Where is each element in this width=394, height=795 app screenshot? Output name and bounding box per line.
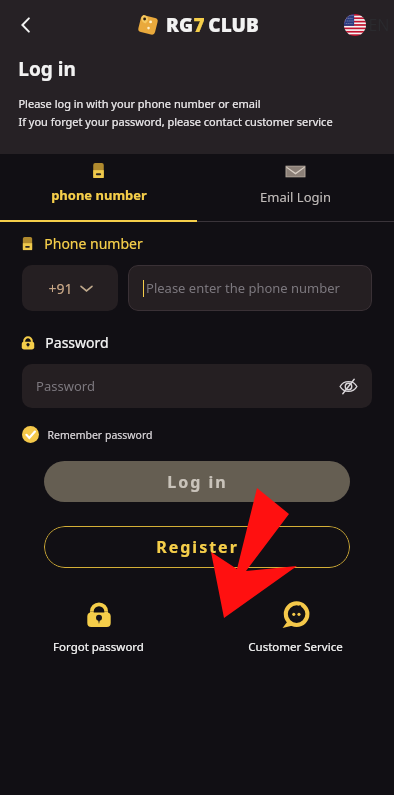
button[interactable]: phone number [0,154,197,222]
staticText: Customer Service [248,639,343,655]
staticText: Log in [18,56,76,82]
staticText: RG [166,12,193,38]
staticText: Register [156,536,239,558]
staticText: Please enter the phone number [146,279,340,297]
button[interactable]: Toggle password visibility [334,372,362,400]
staticText: Log in [167,471,228,493]
staticText: phone number [51,186,147,204]
staticText: Please log in with your phone number or … [18,96,261,111]
staticText: Password [36,377,95,395]
button[interactable]: Password [22,364,372,408]
staticText: If you forget your password, please cont… [18,114,333,129]
button[interactable]: Log in [44,461,350,502]
staticText: Email Login [260,188,331,206]
button[interactable]: Register [44,526,350,568]
staticText: +91 [48,279,73,298]
button[interactable]: Remember password [22,426,153,443]
button[interactable]: Back [8,7,44,43]
button[interactable]: Customer Service [197,600,394,655]
button[interactable]: Forgot password [0,600,197,655]
staticText: 7 [193,12,205,38]
button[interactable]: Please enter the phone number [128,265,372,311]
button[interactable]: +91 [22,265,118,311]
staticText: Remember password [47,428,153,442]
button[interactable]: Email Login [197,154,394,222]
staticText: CLUB [208,12,259,38]
staticText: Password [45,333,109,352]
staticText: Phone number [44,234,143,253]
staticText: Forgot password [53,639,144,655]
button[interactable]: EN [344,14,390,36]
